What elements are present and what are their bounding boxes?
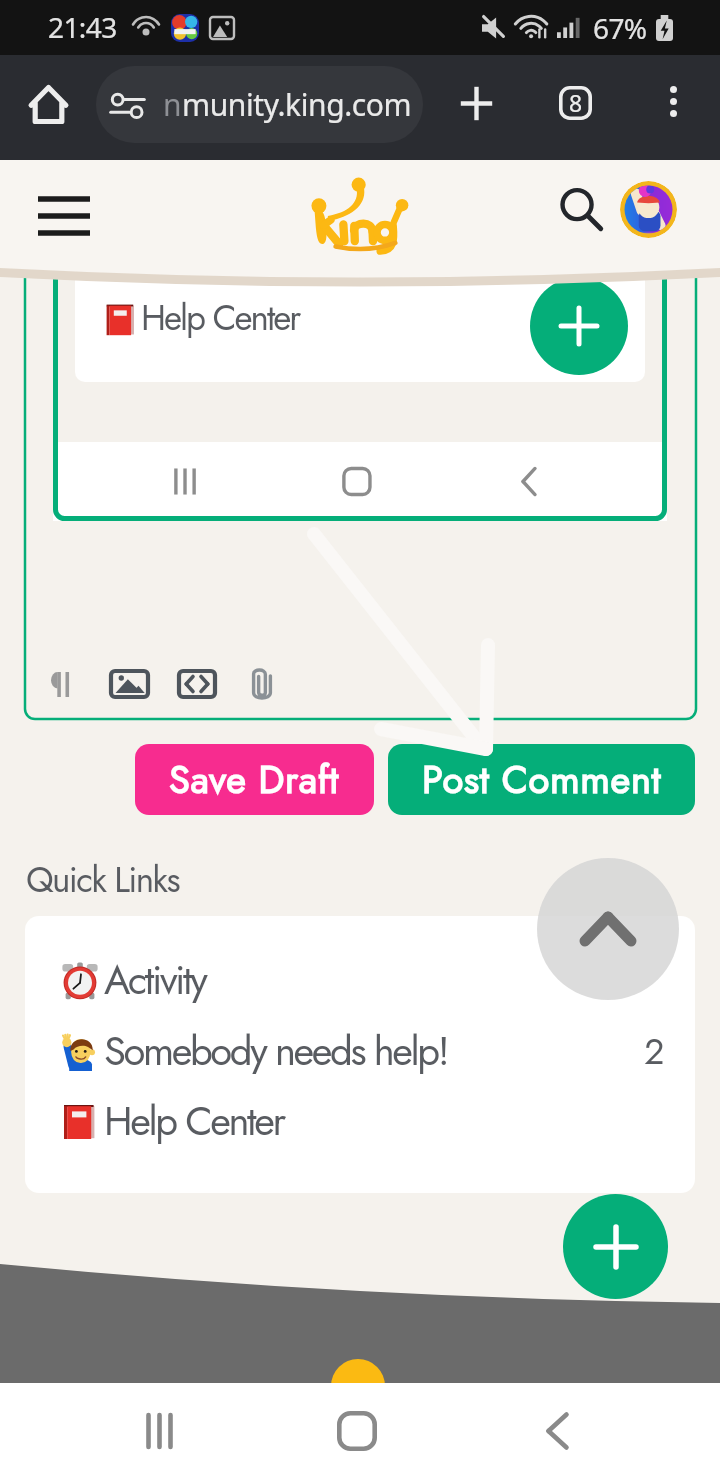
staticText: Somebody needs help! — [104, 1022, 448, 1080]
button[interactable]: Paragraph style — [33, 656, 89, 712]
staticText: Help Center — [104, 1092, 284, 1150]
button[interactable]: Somebody needs help! — [25, 1018, 695, 1084]
staticText: 21:43 — [48, 8, 117, 46]
button[interactable]: New post — [563, 1194, 668, 1299]
staticText: 67% — [593, 9, 647, 47]
button[interactable]: Back — [509, 1383, 605, 1479]
button[interactable]: Activity — [25, 947, 695, 1013]
button[interactable]: Search — [548, 176, 614, 242]
button[interactable]: Menu — [24, 176, 104, 256]
staticText: Help Center — [141, 293, 300, 344]
staticText: munity.king.com — [182, 84, 412, 125]
staticText: Quick Links — [26, 855, 179, 906]
button[interactable]: Profile — [620, 181, 677, 238]
button[interactable]: More options — [645, 73, 701, 129]
staticText: Activity — [104, 951, 206, 1009]
button[interactable]: Post Comment — [388, 744, 695, 815]
button[interactable]: Help Center — [25, 1088, 695, 1154]
button[interactable]: New tab — [446, 73, 507, 134]
staticText: 8 — [569, 87, 583, 118]
staticText: n — [163, 84, 182, 125]
button[interactable]: Tabs — [545, 72, 606, 133]
button[interactable]: Insert code — [169, 656, 225, 712]
button[interactable]: Scroll to top — [537, 858, 679, 1000]
button[interactable]: Recents — [111, 1383, 207, 1479]
button[interactable]: Attach file — [234, 656, 290, 712]
staticText: Save Draft — [169, 752, 340, 807]
staticText: 2 — [644, 1025, 665, 1077]
button[interactable]: Insert image — [101, 656, 157, 712]
button[interactable]: Home — [309, 1383, 405, 1479]
button[interactable]: n — [96, 66, 423, 143]
button[interactable]: Home — [18, 74, 78, 134]
staticText: Post Comment — [422, 752, 662, 807]
button[interactable]: Save Draft — [135, 744, 374, 815]
